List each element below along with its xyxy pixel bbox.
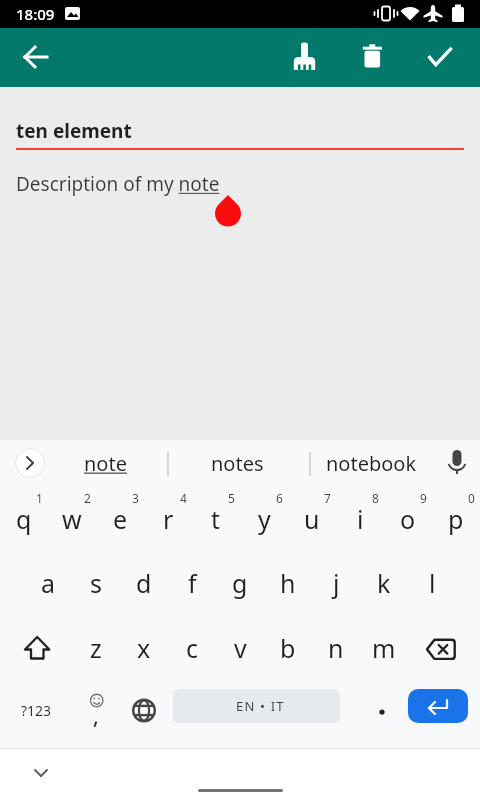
button[interactable]: z <box>72 615 120 680</box>
button[interactable] <box>15 448 45 478</box>
button[interactable] <box>408 689 468 723</box>
button[interactable]: l <box>408 550 456 615</box>
staticText: m <box>372 631 396 665</box>
button[interactable]: note <box>60 440 150 487</box>
staticText: d <box>136 566 152 600</box>
staticText: 7 <box>324 490 331 506</box>
button[interactable]: , <box>72 680 120 748</box>
button[interactable]: n <box>312 615 360 680</box>
staticText: t <box>211 502 221 536</box>
staticText: o <box>400 502 416 536</box>
staticText: 0 <box>468 490 475 506</box>
staticText: s <box>90 566 102 600</box>
button[interactable] <box>280 33 328 81</box>
button[interactable]: e <box>96 487 144 550</box>
staticText: notes <box>211 450 264 477</box>
button[interactable] <box>348 33 396 81</box>
button[interactable]: q <box>0 487 48 550</box>
staticText: 4 <box>180 490 187 506</box>
button[interactable]: w <box>48 487 96 550</box>
button[interactable]: d <box>120 550 168 615</box>
staticText: EN • IT <box>236 697 285 715</box>
staticText: u <box>304 502 320 536</box>
button[interactable]: g <box>216 550 264 615</box>
staticText: y <box>258 502 271 536</box>
button[interactable]: EN • IT <box>173 689 340 723</box>
staticText: x <box>137 631 151 665</box>
staticText: q <box>16 502 32 536</box>
staticText: c <box>186 631 199 665</box>
staticText: l <box>429 566 436 600</box>
button[interactable] <box>120 680 168 748</box>
staticText: p <box>448 502 464 536</box>
staticText: 2 <box>84 490 91 506</box>
staticText: w <box>62 502 82 536</box>
staticText: 18:09 <box>16 4 55 24</box>
button[interactable]: f <box>168 550 216 615</box>
button[interactable]: x <box>120 615 168 680</box>
button[interactable]: p <box>432 487 480 550</box>
button[interactable]: a <box>24 550 72 615</box>
staticText: note <box>84 450 127 477</box>
button[interactable] <box>416 33 464 81</box>
button[interactable]: v <box>216 615 264 680</box>
button[interactable]: i <box>336 487 384 550</box>
button[interactable]: j <box>312 550 360 615</box>
staticText: 1 <box>36 490 43 506</box>
button[interactable]: m <box>360 615 408 680</box>
button[interactable]: k <box>360 550 408 615</box>
staticText: b <box>280 631 296 665</box>
button[interactable]: c <box>168 615 216 680</box>
staticText: r <box>163 502 174 536</box>
button[interactable]: h <box>264 550 312 615</box>
button[interactable]: u <box>288 487 336 550</box>
staticText: a <box>41 566 56 600</box>
staticText: , <box>93 702 99 731</box>
staticText: z <box>90 631 102 665</box>
button[interactable]: r <box>144 487 192 550</box>
button[interactable] <box>12 33 60 81</box>
staticText: v <box>234 631 247 665</box>
button[interactable]: ?123 <box>0 680 72 748</box>
staticText: ?123 <box>21 701 52 720</box>
button[interactable] <box>0 615 72 680</box>
staticText: h <box>280 566 296 600</box>
button[interactable]: notebook <box>314 440 428 487</box>
button[interactable]: s <box>72 550 120 615</box>
staticText: ten element <box>16 118 132 144</box>
staticText: 8 <box>372 490 379 506</box>
button[interactable]: o <box>384 487 432 550</box>
staticText: n <box>328 631 344 665</box>
staticText: Description of my note <box>16 171 220 197</box>
staticText: 9 <box>420 490 427 506</box>
staticText: 5 <box>228 490 235 506</box>
staticText: k <box>377 566 391 600</box>
staticText: 3 <box>132 490 139 506</box>
staticText: e <box>113 502 128 536</box>
staticText: g <box>232 566 248 600</box>
staticText: j <box>333 566 340 600</box>
button[interactable] <box>356 680 404 748</box>
staticText: i <box>357 502 364 536</box>
staticText: notebook <box>326 450 417 477</box>
button[interactable]: y <box>240 487 288 550</box>
button[interactable]: b <box>264 615 312 680</box>
button[interactable]: t <box>192 487 240 550</box>
button[interactable] <box>408 615 480 680</box>
staticText: f <box>188 566 197 600</box>
staticText: 6 <box>276 490 283 506</box>
button[interactable]: notes <box>192 440 282 487</box>
button[interactable] <box>17 749 65 797</box>
